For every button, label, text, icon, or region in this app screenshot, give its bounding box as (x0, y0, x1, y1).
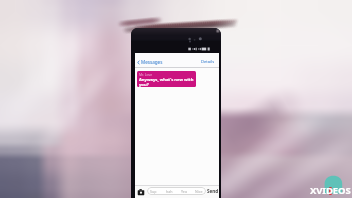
staticText: Nice (195, 189, 203, 194)
staticText: Sup (150, 189, 157, 194)
button[interactable]: Mr. Love (137, 71, 196, 87)
staticText: Mr. Love (139, 72, 153, 77)
staticText: Yea (181, 189, 187, 194)
staticText: Messages (141, 59, 163, 65)
button[interactable]: Details (201, 59, 215, 65)
button[interactable]: Send (207, 188, 219, 194)
staticText: Details (201, 59, 215, 65)
button[interactable]: Camera (137, 188, 145, 196)
staticText: XVIDEOS (310, 184, 351, 197)
button[interactable]: Sup (147, 187, 206, 195)
staticText: Send (207, 188, 219, 194)
staticText: Anyways, what's new with you? (139, 77, 196, 87)
staticText: hah (166, 189, 173, 194)
button[interactable]: Messages (137, 59, 163, 65)
